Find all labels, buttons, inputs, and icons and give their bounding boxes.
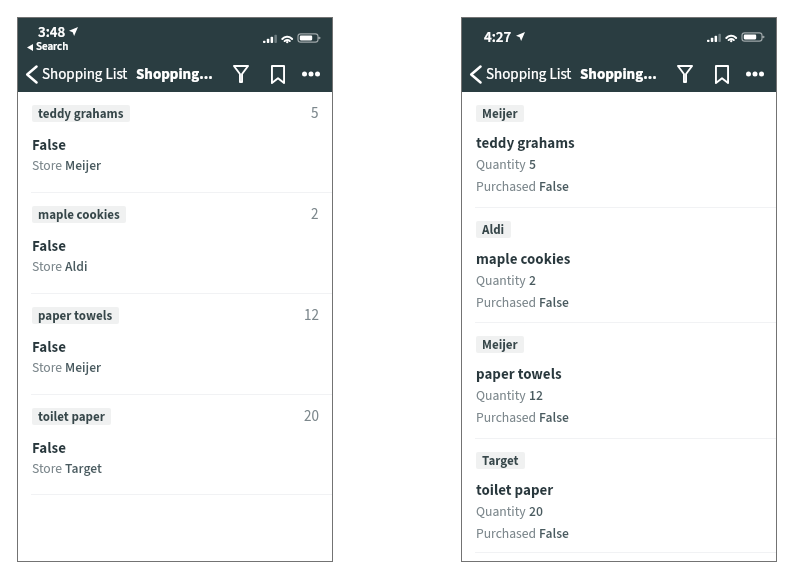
button[interactable]: Target	[462, 439, 776, 552]
staticText: Meijer	[482, 336, 518, 353]
staticText: Meijer	[65, 156, 102, 175]
button[interactable]: Meijer	[462, 323, 776, 438]
staticText: Aldi	[482, 221, 505, 238]
staticText: Target	[65, 459, 102, 478]
staticText: teddy grahams	[38, 105, 124, 122]
staticText: False	[32, 438, 66, 459]
button[interactable]: Aldi	[462, 208, 776, 322]
staticText: False	[32, 135, 66, 156]
staticText: Search	[36, 39, 69, 55]
staticText: False	[32, 337, 66, 358]
staticText: paper towels	[476, 364, 562, 385]
staticText: maple cookies	[38, 206, 120, 223]
staticText: Quantity	[476, 271, 529, 290]
staticText: Purchased	[476, 293, 539, 312]
staticText: maple cookies	[476, 249, 571, 270]
button[interactable]: Bookmark	[708, 60, 736, 88]
button[interactable]: Meijer	[462, 92, 776, 207]
staticText: Shopping...	[136, 64, 213, 85]
button[interactable]: maple cookies	[18, 193, 332, 293]
staticText: teddy grahams	[476, 133, 575, 154]
button[interactable]: More options	[297, 60, 325, 88]
staticText: toilet paper	[38, 408, 105, 425]
staticText: 4:27	[484, 27, 512, 48]
staticText: Purchased	[476, 408, 539, 427]
button[interactable]: More options	[741, 60, 769, 88]
staticText: Shopping...	[580, 64, 657, 85]
button[interactable]: paper towels	[18, 294, 332, 394]
staticText: False	[32, 236, 66, 257]
staticText: paper towels	[38, 307, 113, 324]
staticText: 5	[529, 155, 536, 174]
staticText: False	[539, 524, 569, 543]
staticText: 20	[529, 502, 543, 521]
staticText: 2	[529, 271, 536, 290]
staticText: Store	[32, 459, 65, 478]
staticText: False	[539, 177, 569, 196]
staticText: Shopping List	[486, 64, 572, 85]
staticText: Aldi	[65, 257, 88, 276]
button[interactable]: Shopping List	[18, 64, 128, 85]
staticText: 2	[311, 204, 319, 225]
button[interactable]: Shopping List	[462, 64, 572, 85]
staticText: Meijer	[482, 105, 518, 122]
staticText: 3:48	[38, 22, 66, 43]
staticText: False	[539, 408, 569, 427]
staticText: 12	[529, 386, 543, 405]
button[interactable]: Filter	[227, 60, 255, 88]
staticText: Target	[482, 452, 519, 469]
button[interactable]: toilet paper	[18, 395, 332, 494]
button[interactable]: Bookmark	[264, 60, 292, 88]
staticText: Store	[32, 156, 65, 175]
staticText: Store	[32, 358, 65, 377]
staticText: Store	[32, 257, 65, 276]
staticText: False	[539, 293, 569, 312]
staticText: Shopping List	[42, 64, 128, 85]
staticText: Purchased	[476, 177, 539, 196]
staticText: 20	[304, 406, 319, 427]
staticText: Quantity	[476, 386, 529, 405]
button[interactable]: teddy grahams	[18, 92, 332, 192]
button[interactable]: Filter	[671, 60, 699, 88]
staticText: Quantity	[476, 155, 529, 174]
staticText: toilet paper	[476, 480, 554, 501]
staticText: 12	[304, 305, 319, 326]
staticText: Meijer	[65, 358, 102, 377]
staticText: Quantity	[476, 502, 529, 521]
staticText: 5	[311, 103, 319, 124]
staticText: Purchased	[476, 524, 539, 543]
